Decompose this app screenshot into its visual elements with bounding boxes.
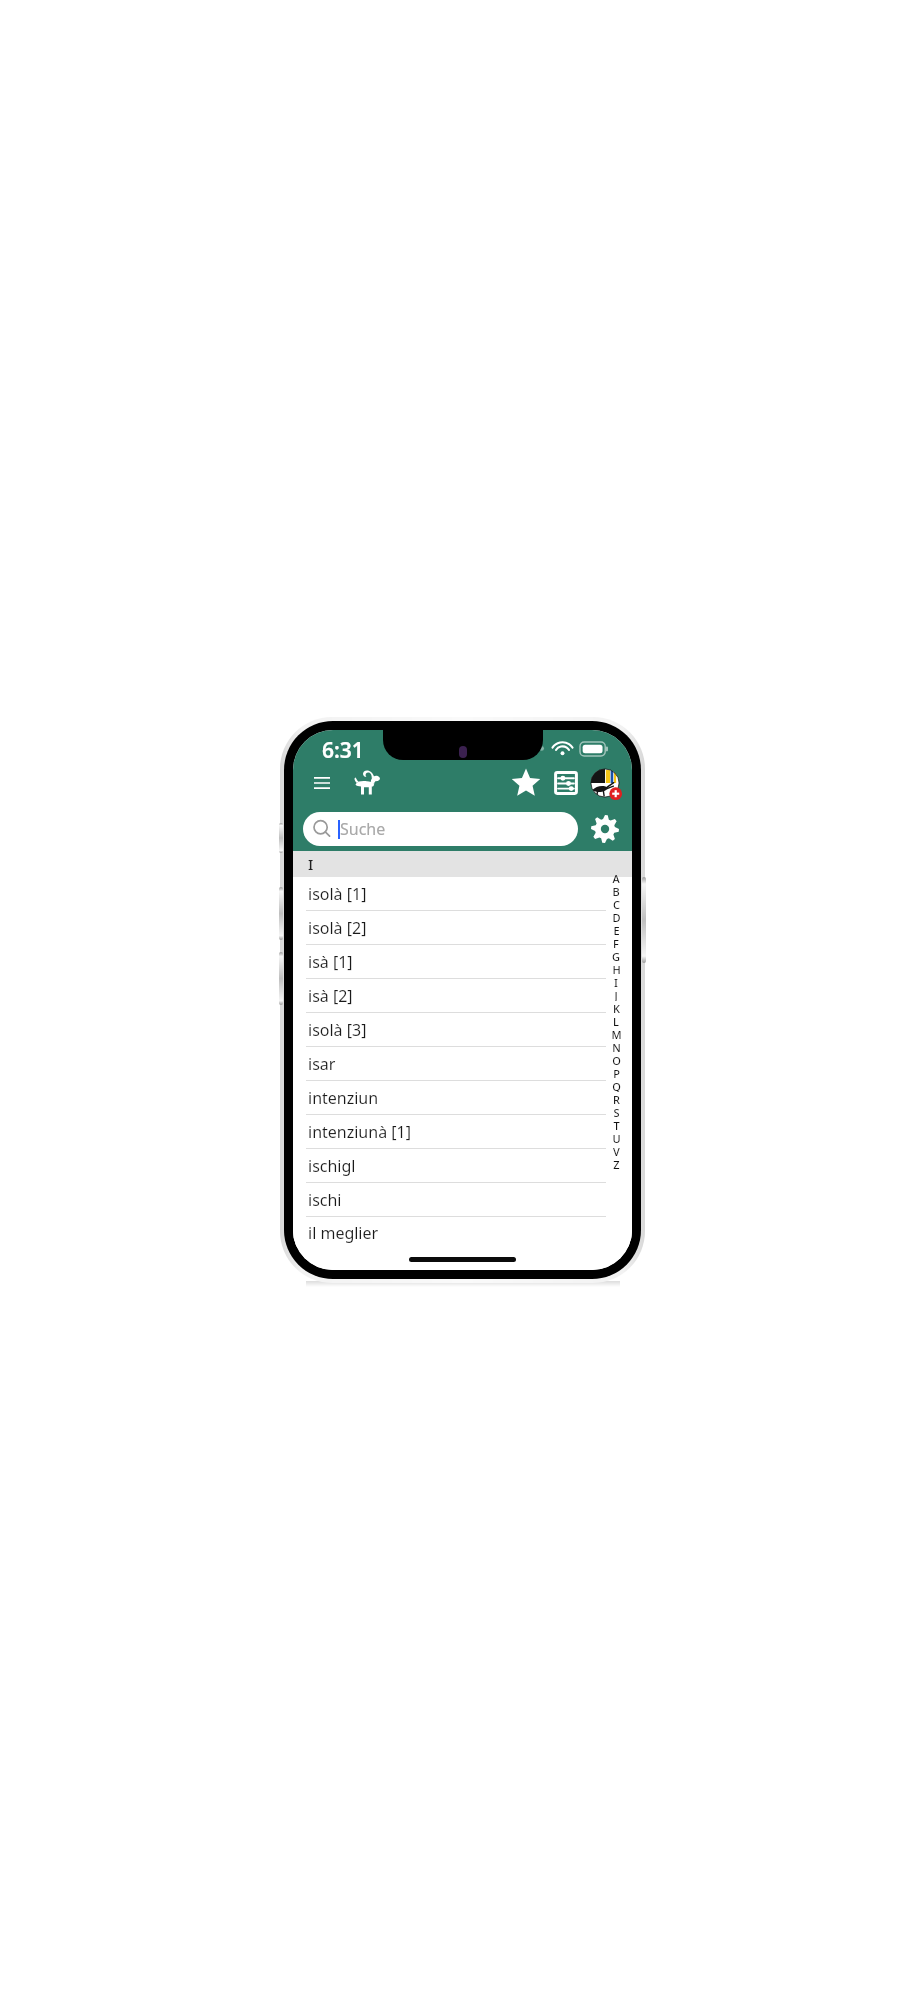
button[interactable]: About this dictionary	[586, 764, 624, 802]
staticText: isà [2]	[308, 985, 353, 1007]
staticText: intenziunà [1]	[308, 1121, 411, 1143]
staticText: J	[614, 988, 618, 1001]
staticText: C	[613, 897, 620, 910]
staticText: Q	[612, 1079, 621, 1092]
staticText: D	[612, 910, 621, 923]
button[interactable]: intenziunà [1]	[293, 1115, 632, 1148]
button[interactable]: Favourites	[507, 764, 545, 802]
staticText: isolà [2]	[308, 917, 367, 939]
staticText: O	[612, 1053, 621, 1066]
staticText: I	[308, 854, 314, 874]
button[interactable]: Open navigation menu	[305, 766, 339, 800]
staticText: H	[612, 962, 621, 975]
button[interactable]: isolà [3]	[293, 1013, 632, 1046]
button[interactable]: isolà [1]	[293, 877, 632, 910]
staticText: isar	[308, 1053, 336, 1075]
staticText: F	[613, 936, 619, 949]
staticText: T	[613, 1118, 620, 1131]
staticText: ischi	[308, 1189, 342, 1211]
button[interactable]: isar	[293, 1047, 632, 1080]
staticText: ischigl	[308, 1155, 356, 1177]
staticText: intenziun	[308, 1087, 379, 1109]
staticText: V	[613, 1144, 620, 1157]
button[interactable]: il meglier	[293, 1217, 632, 1248]
staticText: il meglier	[308, 1222, 379, 1244]
button[interactable]: Search settings	[588, 812, 622, 846]
staticText: E	[613, 923, 620, 936]
button[interactable]: Suche	[303, 812, 578, 846]
button[interactable]: isà [2]	[293, 979, 632, 1012]
staticText: M	[611, 1027, 622, 1040]
staticText: U	[612, 1131, 621, 1144]
button[interactable]: Dictionary home	[347, 763, 387, 803]
staticText: isolà [1]	[308, 883, 367, 905]
staticText: G	[612, 949, 620, 962]
staticText: isolà [3]	[308, 1019, 367, 1041]
button[interactable]: isà [1]	[293, 945, 632, 978]
button[interactable]: ischi	[293, 1183, 632, 1216]
staticText: 6:31	[322, 736, 364, 760]
staticText: Z	[613, 1157, 620, 1170]
staticText: Suche	[340, 818, 386, 840]
staticText: isà [1]	[308, 951, 353, 973]
staticText: S	[613, 1105, 620, 1118]
button[interactable]: ischigl	[293, 1149, 632, 1182]
staticText: N	[612, 1040, 621, 1053]
staticText: A	[612, 871, 620, 884]
button[interactable]: intenziun	[293, 1081, 632, 1114]
staticText: R	[613, 1092, 620, 1105]
staticText: B	[612, 884, 620, 897]
staticText: L	[613, 1014, 619, 1027]
staticText: K	[613, 1001, 620, 1014]
button[interactable]: Alphabet index	[603, 871, 629, 1170]
button[interactable]: isolà [2]	[293, 911, 632, 944]
staticText: P	[613, 1066, 620, 1079]
staticText: I	[614, 975, 618, 988]
button[interactable]: Filter settings	[547, 764, 585, 802]
